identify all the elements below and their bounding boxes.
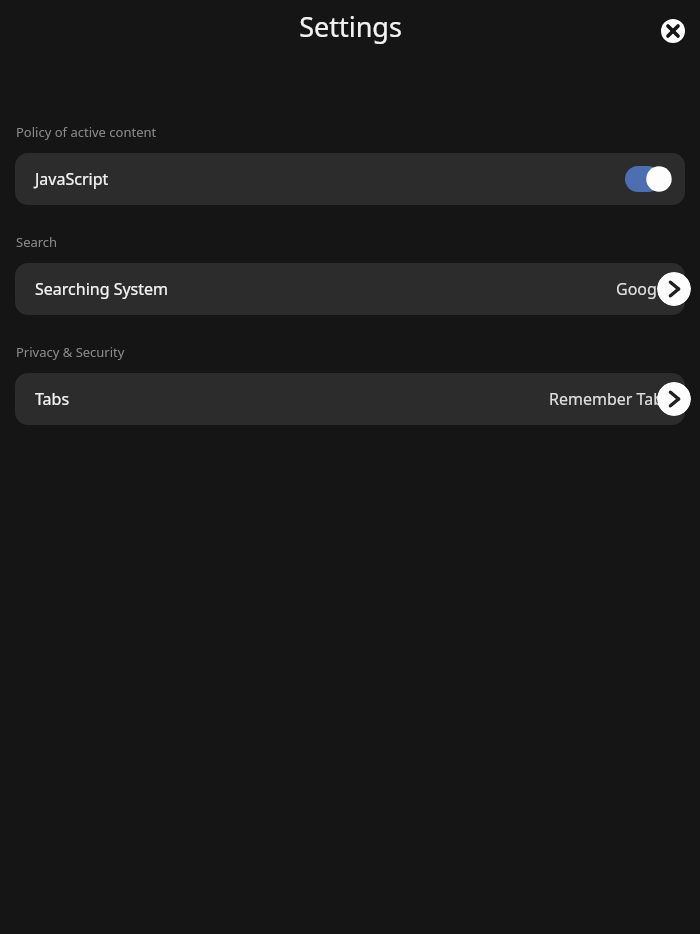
button[interactable]: Close (656, 14, 690, 48)
button[interactable]: Searching System (15, 263, 685, 315)
staticText: Policy of active content (16, 123, 157, 141)
button[interactable]: Open Searching System (657, 272, 691, 306)
staticText: Google (616, 278, 671, 300)
staticText: Remember Tabs (549, 388, 671, 410)
button[interactable]: JavaScript (15, 153, 685, 205)
staticText: Tabs (35, 388, 70, 410)
staticText: JavaScript (35, 168, 109, 190)
button[interactable]: Tabs (15, 373, 685, 425)
staticText: Settings (299, 8, 402, 45)
button[interactable]: Open Tabs (657, 382, 691, 416)
staticText: Searching System (35, 278, 169, 300)
staticText: Search (16, 233, 58, 251)
staticText: Privacy & Security (16, 343, 125, 361)
